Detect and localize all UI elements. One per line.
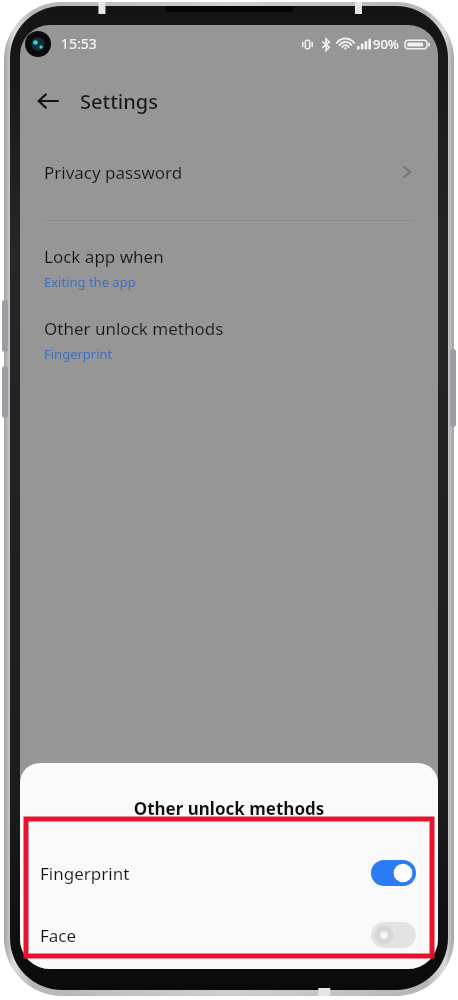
button[interactable]: Other unlock methods — [20, 315, 438, 365]
staticText: Exiting the app — [44, 273, 136, 291]
staticText: 90% — [373, 35, 399, 53]
staticText: Lock app when — [44, 245, 164, 268]
staticText: Fingerprint — [40, 862, 130, 885]
button[interactable]: Fingerprint — [20, 842, 438, 904]
staticText: Settings — [80, 88, 158, 115]
button[interactable]: Face — [20, 904, 438, 966]
staticText: Privacy password — [44, 161, 183, 184]
button[interactable]: Privacy password — [20, 146, 438, 198]
button[interactable]: Back — [28, 81, 68, 121]
staticText: Face — [40, 924, 77, 947]
staticText: Fingerprint — [44, 345, 113, 363]
staticText: Other unlock methods — [20, 797, 438, 820]
staticText: Other unlock methods — [44, 317, 224, 340]
button[interactable]: Lock app when — [20, 243, 438, 293]
staticText: 15:53 — [61, 34, 97, 53]
